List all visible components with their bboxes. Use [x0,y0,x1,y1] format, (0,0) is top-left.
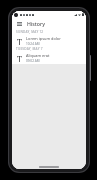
button[interactable]: T [12,35,86,46]
staticText: 09:02 AM [26,59,40,63]
staticText: History [27,20,45,27]
staticText: TUESDAY, MAY 7 [16,47,43,51]
button[interactable]: T [12,52,86,63]
button[interactable]: Open navigation menu [15,19,24,28]
staticText: SUNDAY, MAY 12 [16,30,44,34]
staticText: Aliquam erat [26,53,50,58]
staticText: T [17,37,22,45]
staticText: Lorem ipsum dolor [26,36,61,41]
staticText: T [17,54,22,62]
staticText: 10:24 AM [26,42,40,46]
